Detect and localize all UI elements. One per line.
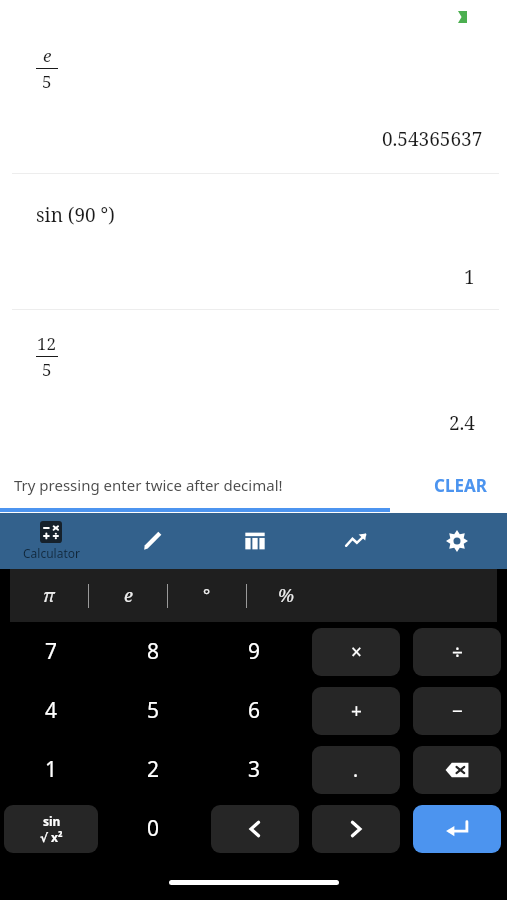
staticText: π (43, 583, 55, 608)
button[interactable]: Functions (4, 805, 98, 853)
staticText: 0.54365637 (382, 126, 483, 152)
staticText: Try pressing enter twice after decimal! (14, 475, 283, 495)
staticText: 1 (45, 755, 58, 784)
button[interactable]: 2 (102, 740, 204, 799)
button[interactable]: 5 (102, 681, 204, 740)
button[interactable]: 0 (102, 799, 204, 858)
staticText: 12 (37, 332, 57, 355)
staticText: 9 (248, 637, 261, 666)
button[interactable]: Calculator (0, 513, 102, 569)
staticText: 3 (248, 755, 261, 784)
button[interactable]: 4 (0, 681, 102, 740)
staticText: 0 (147, 814, 160, 843)
button[interactable]: % (247, 569, 325, 622)
button[interactable]: 6 (204, 681, 305, 740)
staticText: % (278, 583, 295, 608)
staticText: 8 (147, 637, 160, 666)
staticText: + (351, 698, 362, 724)
button[interactable]: e (89, 569, 167, 622)
staticText: CLEAR (434, 474, 487, 497)
staticText: 1 (464, 264, 475, 290)
button[interactable]: 8 (102, 622, 204, 681)
staticText: 6 (248, 696, 261, 725)
staticText: 2.4 (449, 410, 475, 436)
staticText: − (452, 698, 463, 724)
button[interactable]: CLEAR (428, 470, 493, 501)
button[interactable]: Backspace (413, 746, 501, 794)
staticText: 2 (147, 755, 160, 784)
button[interactable]: Multiply (312, 628, 400, 676)
button[interactable]: Enter (413, 805, 501, 853)
staticText: e (43, 44, 52, 67)
staticText: 5 (42, 358, 52, 381)
button[interactable]: π (10, 569, 88, 622)
staticText: × (351, 639, 362, 665)
staticText: √ x² (40, 829, 63, 845)
button[interactable]: 3 (204, 740, 305, 799)
staticText: 7 (45, 637, 58, 666)
button[interactable]: 12 (0, 310, 507, 455)
button[interactable]: e (0, 34, 507, 173)
staticText: sin (90 °) (36, 202, 115, 228)
staticText: 5 (42, 70, 52, 93)
button[interactable]: Table (204, 513, 305, 569)
button[interactable]: Edit (102, 513, 204, 569)
button[interactable]: Move right (312, 805, 400, 853)
staticText: . (353, 757, 359, 783)
staticText: sin (43, 813, 61, 829)
button[interactable]: Move left (211, 805, 299, 853)
button[interactable]: Settings (406, 513, 507, 569)
button[interactable]: Graph (305, 513, 406, 569)
staticText: e (124, 583, 133, 608)
button[interactable]: 1 (0, 740, 102, 799)
button[interactable]: Divide (413, 628, 501, 676)
button[interactable]: Subtract (413, 687, 501, 735)
staticText: ° (203, 583, 211, 608)
staticText: ÷ (452, 639, 463, 665)
staticText: Calculator (23, 545, 80, 561)
button[interactable]: 9 (204, 622, 305, 681)
staticText: 4 (45, 696, 58, 725)
button[interactable]: 7 (0, 622, 102, 681)
button[interactable]: sin (90 °) (0, 174, 507, 309)
staticText: 5 (147, 696, 160, 725)
button[interactable]: Decimal point (312, 746, 400, 794)
button[interactable]: Add (312, 687, 400, 735)
button[interactable]: ° (168, 569, 246, 622)
